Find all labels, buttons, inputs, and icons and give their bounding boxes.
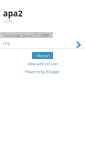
staticText: View web version bbox=[27, 61, 57, 66]
staticText: Home bbox=[36, 53, 48, 58]
button[interactable]: View web version bbox=[27, 61, 57, 66]
button[interactable]: Next post bbox=[72, 37, 85, 53]
button[interactable]: Powered by Blogger. bbox=[25, 69, 60, 74]
button[interactable]: Home bbox=[32, 52, 53, 59]
staticText: apa2 bbox=[3, 8, 23, 19]
staticText: rrq bbox=[3, 40, 10, 46]
staticText: Powered by Blogger. bbox=[25, 69, 60, 74]
staticText: ooh bbox=[3, 18, 12, 24]
staticText: Tuesday, June 17, 2008 bbox=[3, 32, 49, 38]
